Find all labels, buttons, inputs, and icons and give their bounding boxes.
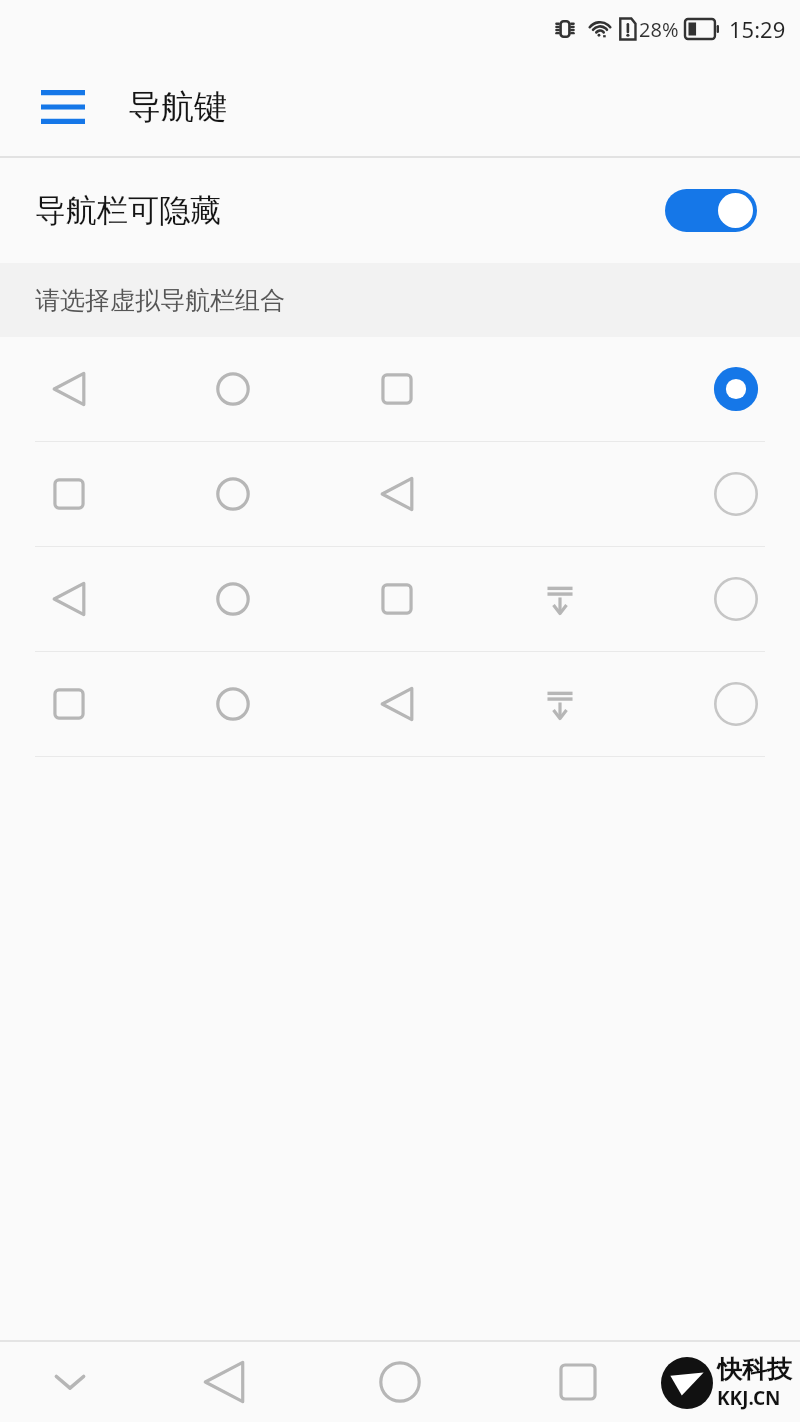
button[interactable]: Navigation key combination option <box>0 442 800 546</box>
button[interactable]: Home <box>372 1354 428 1410</box>
button[interactable]: Navigation key combination option <box>0 337 800 441</box>
button[interactable]: Navigation key combination option <box>0 547 800 651</box>
staticText: 15:29 <box>729 14 786 44</box>
button[interactable]: Hide navigation bar <box>44 1356 96 1408</box>
button[interactable]: Recents <box>550 1354 606 1410</box>
staticText: KKJ.CN <box>717 1385 781 1411</box>
button[interactable]: Hide navigation bar toggle <box>665 189 757 232</box>
button[interactable]: Navigation key combination option <box>0 652 800 756</box>
staticText: 导航键 <box>128 86 227 128</box>
button[interactable]: Back <box>196 1354 252 1410</box>
button[interactable]: 导航栏可隐藏 <box>0 158 800 263</box>
staticText: 请选择虚拟导航栏组合 <box>35 285 285 316</box>
staticText: 导航栏可隐藏 <box>35 191 221 230</box>
button[interactable]: Menu <box>26 75 100 139</box>
staticText: 28% <box>639 16 679 43</box>
staticText: 快科技 <box>717 1354 792 1385</box>
